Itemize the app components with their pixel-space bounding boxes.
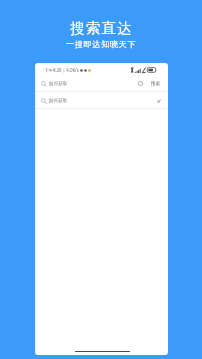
staticText: 搜索直达: [70, 19, 133, 37]
staticText: 下午4:26 | 4.0K/s: [44, 67, 79, 73]
staticText: 搜索: [151, 81, 161, 87]
button[interactable]: Voice search: [138, 81, 143, 86]
button[interactable]: 如何获取: [41, 78, 164, 89]
staticText: 如何获取: [49, 98, 68, 104]
staticText: 一搜即达知晓天下: [66, 39, 137, 49]
button[interactable]: 如何获取: [41, 95, 164, 106]
button[interactable]: Fill in query: [157, 99, 161, 103]
staticText: 如何获取: [49, 81, 68, 87]
button[interactable]: 搜索: [151, 81, 161, 87]
